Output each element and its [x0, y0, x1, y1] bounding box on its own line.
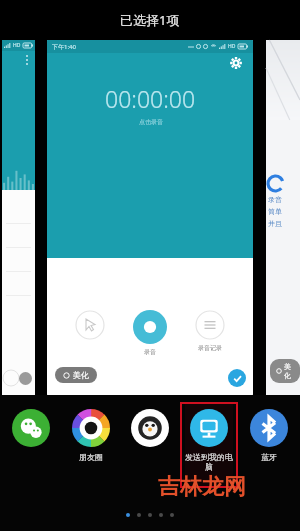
staticText: 下午1:40: [52, 43, 76, 51]
staticText: 吉林龙网: [158, 473, 246, 501]
button[interactable]: 下午1:40: [47, 40, 253, 395]
staticText: 蓝牙: [261, 452, 277, 462]
staticText: HD: [228, 43, 236, 50]
staticText: 录音记录: [198, 344, 222, 352]
button[interactable]: 指针: [75, 310, 105, 353]
button[interactable]: [12, 403, 50, 447]
staticText: 美化: [73, 370, 89, 380]
button[interactable]: HD: [2, 40, 35, 395]
staticText: 美化: [284, 362, 294, 380]
staticText: 简单: [268, 207, 282, 216]
button[interactable]: 设置: [229, 56, 243, 70]
button[interactable]: 朋友圈: [72, 403, 110, 462]
staticText: 点击录音: [139, 118, 163, 126]
staticText: HD: [13, 42, 21, 49]
staticText: 并且: [268, 219, 282, 228]
button[interactable]: 美化: [55, 367, 97, 383]
staticText: 发送到我的电 脑: [185, 452, 233, 472]
button[interactable]: 已选中: [228, 369, 246, 387]
staticText: 00:00:00: [105, 83, 196, 114]
button[interactable]: [131, 403, 169, 447]
button[interactable]: 录音: [266, 40, 300, 395]
staticText: 朋友圈: [79, 452, 103, 462]
staticText: 录音: [268, 195, 282, 204]
staticText: 录音: [144, 348, 156, 356]
staticText: 已选择1项: [120, 11, 180, 29]
button[interactable]: 蓝牙: [250, 403, 288, 462]
button[interactable]: 发送到我的电 脑: [185, 403, 233, 487]
button[interactable]: 美化: [270, 359, 300, 383]
button[interactable]: 录音记录: [195, 310, 225, 352]
button[interactable]: 录音: [133, 310, 167, 356]
